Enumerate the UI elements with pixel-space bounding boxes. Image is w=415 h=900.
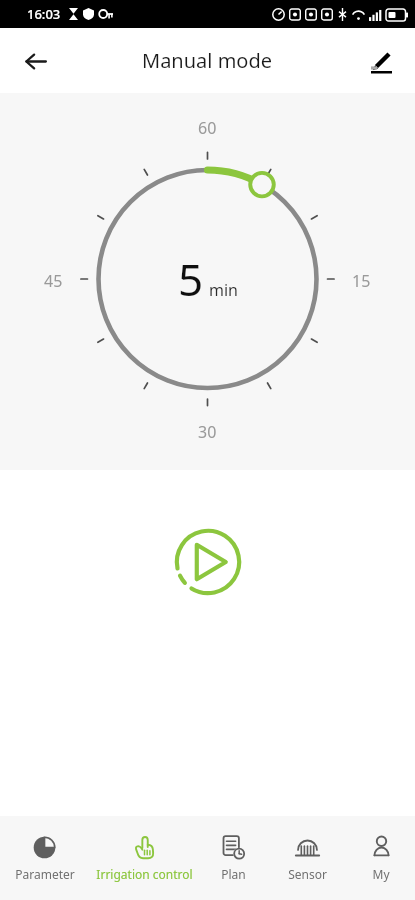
staticText: min bbox=[209, 279, 238, 301]
staticText: 16:03 bbox=[27, 5, 61, 23]
button[interactable]: Back bbox=[12, 38, 58, 84]
button[interactable]: Irrigation control bbox=[89, 816, 199, 900]
button[interactable]: Edit bbox=[358, 38, 404, 84]
staticText: 30 bbox=[198, 421, 217, 443]
staticText: Manual mode bbox=[142, 47, 273, 74]
button[interactable]: Start irrigation bbox=[170, 524, 246, 600]
staticText: Plan bbox=[221, 866, 246, 882]
staticText: Sensor bbox=[288, 866, 327, 882]
staticText: 45 bbox=[44, 270, 63, 292]
button[interactable]: Sensor bbox=[267, 816, 347, 900]
button[interactable]: Parameter bbox=[0, 816, 89, 900]
staticText: 5 bbox=[178, 249, 204, 309]
button[interactable]: Plan bbox=[199, 816, 267, 900]
staticText: Parameter bbox=[15, 866, 75, 882]
staticText: My bbox=[372, 866, 390, 882]
staticText: 60 bbox=[198, 117, 217, 139]
button[interactable]: My bbox=[347, 816, 415, 900]
staticText: Irrigation control bbox=[96, 866, 193, 882]
staticText: 15 bbox=[352, 270, 371, 292]
